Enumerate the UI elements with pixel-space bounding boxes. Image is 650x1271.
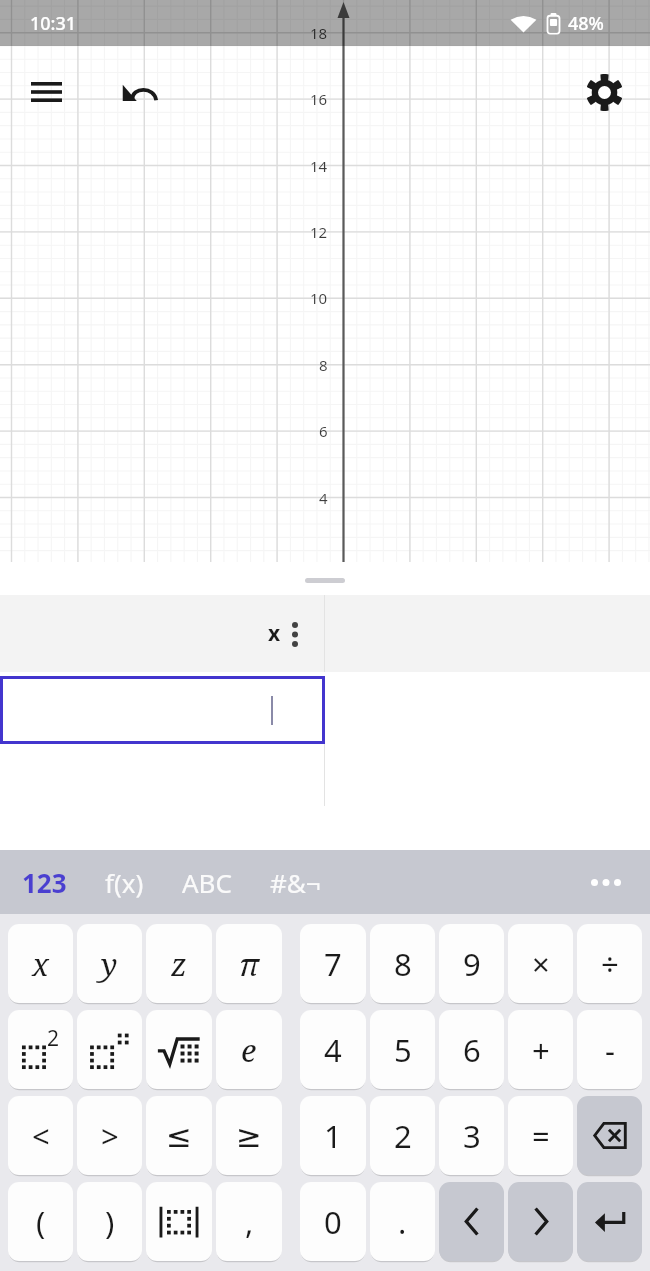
- button[interactable]: ×: [508, 924, 573, 1003]
- staticText: 5: [394, 1029, 412, 1071]
- staticText: ≥: [236, 1118, 262, 1154]
- button[interactable]: 4: [300, 1010, 366, 1089]
- button[interactable]: More options: [284, 612, 306, 656]
- staticText: 6: [463, 1029, 481, 1071]
- staticText: ×: [532, 943, 550, 985]
- staticText: f(x): [105, 865, 144, 900]
- button[interactable]: =: [508, 1096, 573, 1175]
- button[interactable]: ABC: [163, 854, 251, 910]
- button[interactable]: 1: [300, 1096, 366, 1175]
- button[interactable]: [0, 676, 325, 744]
- button[interactable]: ): [77, 1182, 142, 1261]
- button[interactable]: ,: [216, 1182, 282, 1261]
- staticText: 4: [324, 1029, 342, 1071]
- staticText: 0: [324, 1201, 342, 1243]
- button[interactable]: x: [0, 595, 324, 672]
- staticText: ÷: [601, 943, 619, 985]
- staticText: .: [398, 1201, 407, 1243]
- button[interactable]: sqrt: [146, 1010, 212, 1089]
- staticText: <: [32, 1115, 50, 1157]
- staticText: y: [101, 943, 118, 985]
- button[interactable]: Right: [508, 1182, 573, 1261]
- button[interactable]: Left: [439, 1182, 504, 1261]
- staticText: 48%: [568, 11, 604, 36]
- staticText: -: [605, 1029, 615, 1071]
- button[interactable]: 5: [370, 1010, 435, 1089]
- staticText: 6: [319, 421, 328, 441]
- button[interactable]: 8: [370, 924, 435, 1003]
- button[interactable]: Undo: [107, 68, 172, 116]
- staticText: ): [105, 1201, 115, 1243]
- staticText: 12: [310, 222, 328, 242]
- staticText: 8: [319, 355, 328, 375]
- button[interactable]: π: [216, 924, 282, 1003]
- staticText: 16: [310, 89, 328, 109]
- staticText: 14: [310, 156, 328, 176]
- button[interactable]: z: [146, 924, 212, 1003]
- button[interactable]: 0: [300, 1182, 366, 1261]
- button[interactable]: 3: [439, 1096, 504, 1175]
- button[interactable]: e: [216, 1010, 282, 1089]
- staticText: 2: [394, 1115, 412, 1157]
- button[interactable]: 9: [439, 924, 504, 1003]
- staticText: 18: [310, 23, 328, 43]
- button[interactable]: y: [77, 924, 142, 1003]
- button[interactable]: abs: [146, 1182, 212, 1261]
- button[interactable]: -: [577, 1010, 642, 1089]
- staticText: #&¬: [270, 865, 321, 900]
- staticText: 10: [310, 288, 328, 308]
- button[interactable]: 2: [370, 1096, 435, 1175]
- button[interactable]: 7: [300, 924, 366, 1003]
- staticText: x: [268, 619, 281, 648]
- staticText: π: [239, 943, 260, 985]
- staticText: 9: [463, 943, 481, 985]
- button[interactable]: <: [8, 1096, 73, 1175]
- button[interactable]: >: [77, 1096, 142, 1175]
- button[interactable]: ≥: [216, 1096, 282, 1175]
- staticText: 3: [463, 1115, 481, 1157]
- staticText: ABC: [182, 865, 232, 900]
- button[interactable]: Menu: [15, 68, 77, 116]
- staticText: 10:31: [30, 11, 77, 36]
- staticText: ,: [245, 1201, 254, 1243]
- staticText: +: [532, 1029, 550, 1071]
- staticText: x: [32, 943, 49, 985]
- staticText: 1: [324, 1115, 342, 1157]
- button[interactable]: f(x): [86, 854, 163, 910]
- staticText: 8: [394, 943, 412, 985]
- staticText: e: [241, 1029, 257, 1071]
- button[interactable]: Settings: [574, 62, 634, 122]
- button[interactable]: More: [580, 857, 632, 907]
- button[interactable]: ≤: [146, 1096, 212, 1175]
- button[interactable]: Enter: [577, 1182, 642, 1261]
- button[interactable]: +: [508, 1010, 573, 1089]
- button[interactable]: .: [370, 1182, 435, 1261]
- staticText: 2: [47, 1024, 60, 1053]
- button[interactable]: #&¬: [251, 854, 340, 910]
- button[interactable]: 123: [3, 854, 86, 910]
- button[interactable]: pow: [77, 1010, 142, 1089]
- staticText: 4: [319, 488, 328, 508]
- staticText: ≤: [166, 1118, 192, 1154]
- button[interactable]: (: [8, 1182, 73, 1261]
- staticText: 7: [324, 943, 342, 985]
- staticText: (: [36, 1201, 46, 1243]
- button[interactable]: sq: [8, 1010, 73, 1089]
- staticText: z: [171, 943, 187, 985]
- staticText: 123: [22, 865, 67, 900]
- staticText: =: [532, 1115, 550, 1157]
- staticText: >: [101, 1115, 119, 1157]
- button[interactable]: x: [8, 924, 73, 1003]
- button[interactable]: 6: [439, 1010, 504, 1089]
- button[interactable]: ÷: [577, 924, 642, 1003]
- button[interactable]: Backspace: [577, 1096, 642, 1175]
